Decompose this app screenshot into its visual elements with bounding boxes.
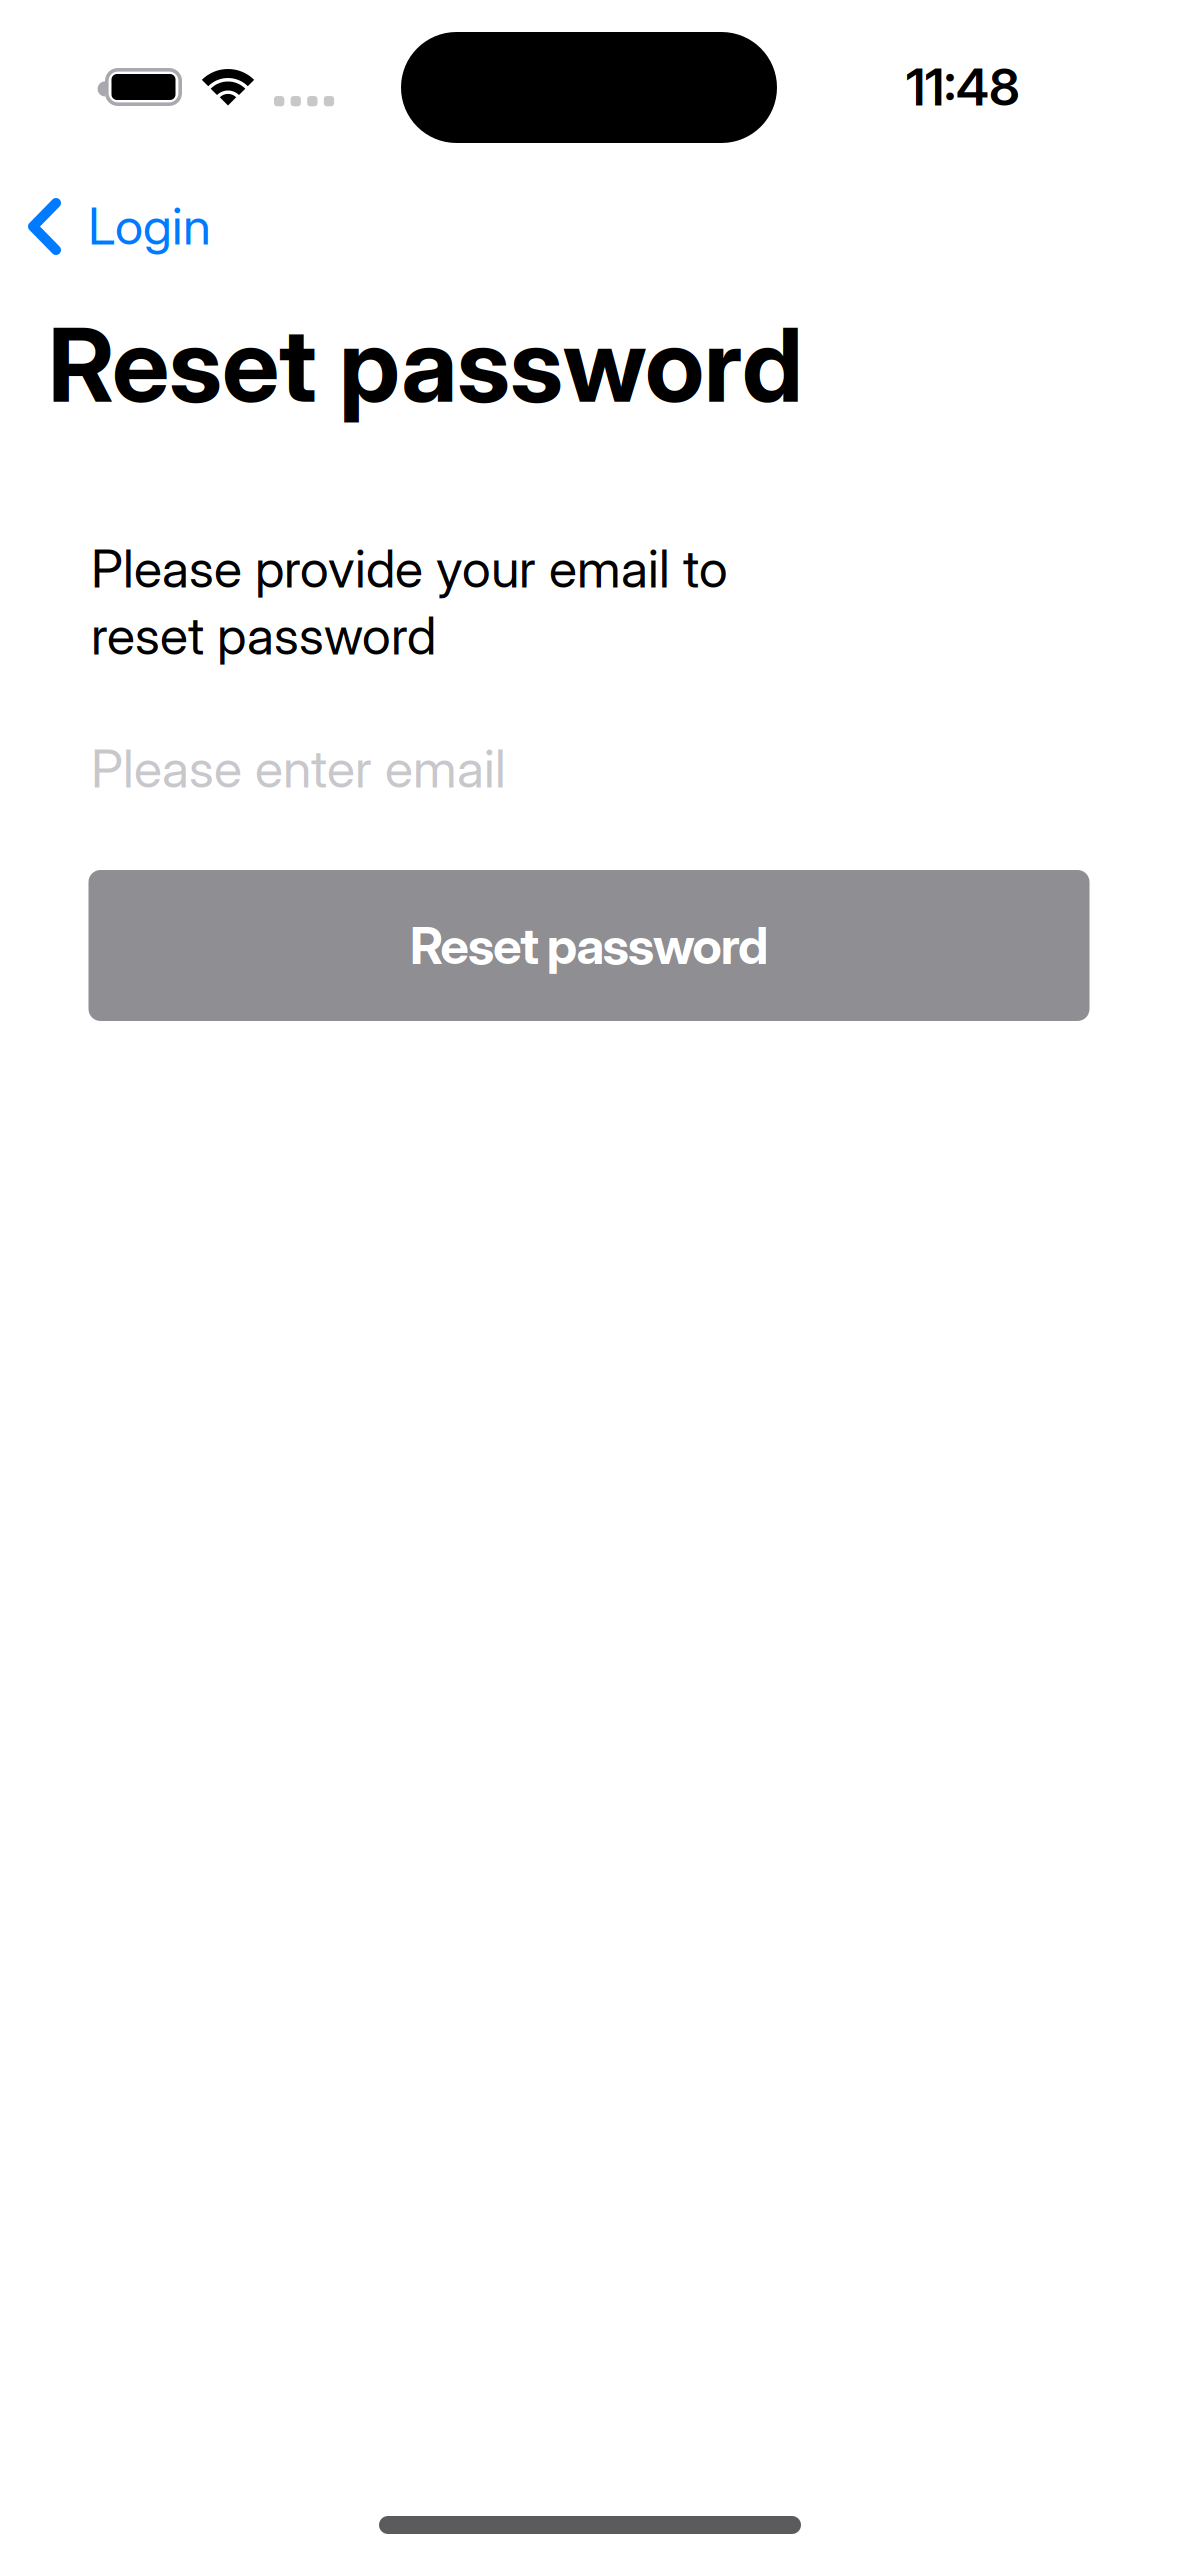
staticText: Reset password	[410, 915, 768, 976]
staticText: Please enter email	[91, 737, 506, 800]
staticText: Login	[88, 195, 211, 257]
staticText: Please provide your email to	[91, 537, 728, 600]
button[interactable]: Login	[28, 195, 213, 258]
staticText: 11:48	[906, 56, 1020, 118]
staticText: reset password	[91, 604, 436, 667]
staticText: Reset password	[48, 303, 803, 426]
button[interactable]: Reset password	[88, 870, 1089, 1021]
